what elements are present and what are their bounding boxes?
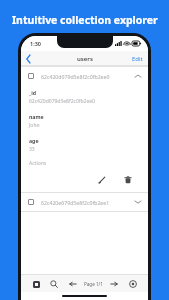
staticText: 62c420e679d5e8f2c0fb2ee1 xyxy=(41,199,110,206)
staticText: users xyxy=(77,55,93,63)
staticText: 62c420d079d5e8f2c0fb2ee0 xyxy=(29,98,95,105)
staticText: age xyxy=(29,137,39,144)
button[interactable]: Settings xyxy=(126,277,140,291)
button[interactable]: Next page xyxy=(107,277,121,291)
staticText: _id xyxy=(29,89,36,96)
staticText: 1:30 xyxy=(30,40,41,47)
button[interactable]: Collections xyxy=(29,277,43,291)
staticText: John xyxy=(29,122,40,129)
button[interactable]: Delete record xyxy=(120,172,136,188)
button[interactable]: Edit record xyxy=(94,172,110,188)
button[interactable]: Back xyxy=(21,52,35,66)
button[interactable]: Edit xyxy=(127,52,148,66)
staticText: Page 1/1 xyxy=(84,281,103,287)
button[interactable]: 62c420e679d5e8f2c0fb2ee1 xyxy=(21,193,148,211)
staticText: 33 xyxy=(29,146,35,153)
button[interactable]: 62c420d079d5e8f2c0fb2ee0 xyxy=(21,67,148,85)
staticText: 62c420d079d5e8f2c0fb2ee0 xyxy=(41,73,110,80)
staticText: Intuitive collection explorer xyxy=(12,13,158,27)
button[interactable]: Search xyxy=(47,277,61,291)
staticText: name xyxy=(29,113,44,120)
staticText: Actions xyxy=(29,160,47,167)
staticText: Edit xyxy=(132,55,143,63)
button[interactable]: Previous page xyxy=(66,277,80,291)
